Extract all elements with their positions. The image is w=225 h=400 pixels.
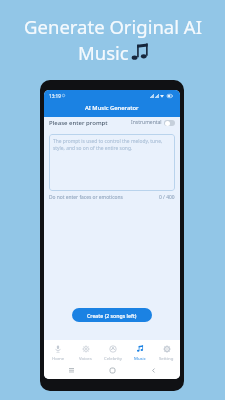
staticText: Voices [79,355,92,361]
button[interactable]: Recents [66,365,76,375]
staticText: Instrumental [131,119,162,126]
button[interactable]: Setting [153,340,180,361]
staticText: AI Music Generator [85,104,139,112]
button[interactable]: Instrumental toggle [164,120,175,126]
button[interactable]: The prompt is used to control the melody… [49,134,175,191]
staticText: Create (2 songs left) [87,312,137,319]
staticText: Do not enter faces or emoticons [49,194,123,201]
button[interactable]: Home [107,365,117,375]
staticText: 13:19 [49,93,61,99]
button[interactable]: Voices [72,340,99,361]
staticText: 0 / 400 [159,194,175,201]
staticText: Music [134,355,146,361]
button[interactable]: Back [148,365,158,375]
staticText: Music [78,40,129,65]
staticText: Setting [159,355,174,361]
staticText: Generate Original AI [24,14,202,39]
button[interactable]: Create (2 songs left) [72,308,152,322]
staticText: Celebrity [104,355,122,361]
staticText: The prompt is used to control the melody… [53,138,171,152]
button[interactable]: Celebrity [99,340,126,361]
button[interactable]: Music [126,340,153,361]
staticText: Please enter prompt [49,119,108,127]
button[interactable]: Home [44,340,72,361]
staticText: Home [52,355,65,361]
